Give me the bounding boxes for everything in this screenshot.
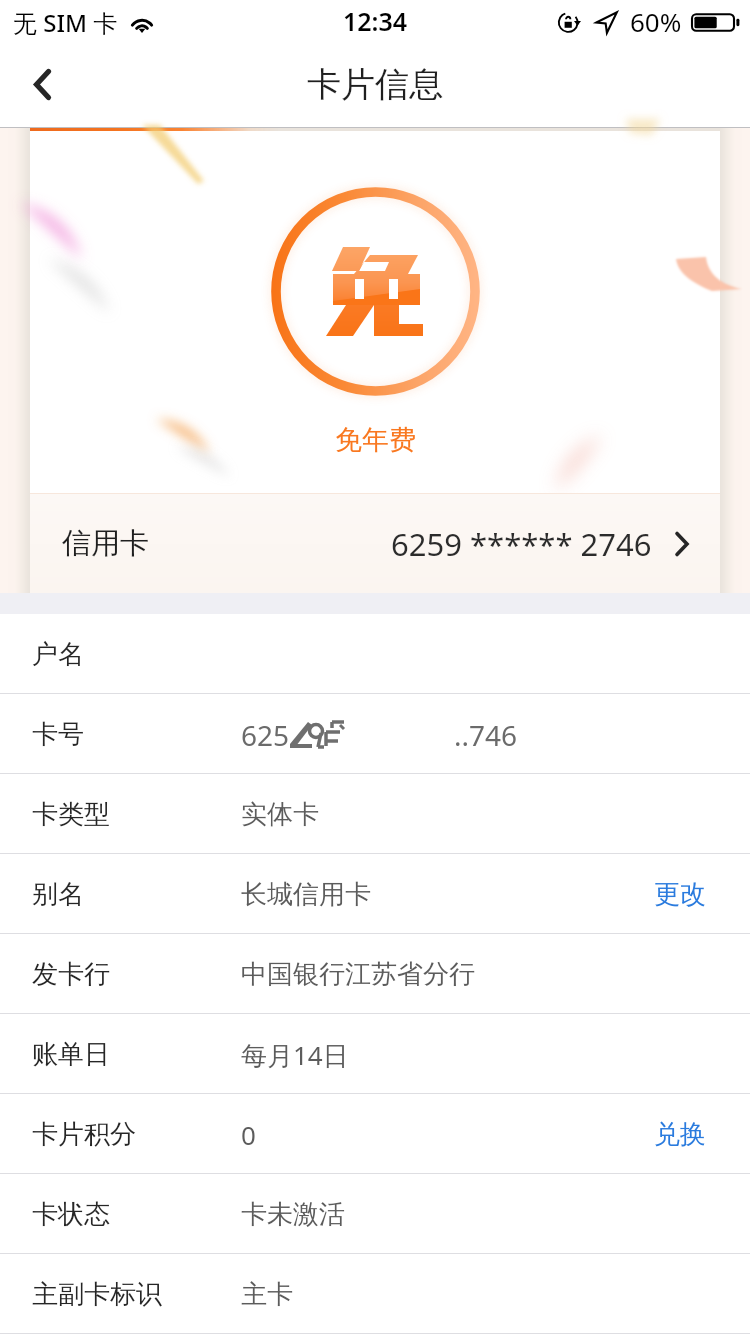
staticText: 卡类型	[32, 798, 110, 831]
button[interactable]: 免年费	[30, 128, 720, 593]
staticText: 发卡行	[32, 958, 110, 991]
staticText: ..746	[454, 716, 518, 754]
staticText: 卡状态	[32, 1198, 110, 1231]
staticText: 兑换	[654, 1118, 706, 1151]
staticText: 长城信用卡	[241, 878, 371, 911]
staticText: 别名	[32, 878, 84, 911]
staticText: 每月14日	[241, 1037, 349, 1073]
button[interactable]: 别名	[0, 854, 750, 933]
staticText: 更改	[654, 878, 706, 911]
button[interactable]: 卡状态	[0, 1174, 750, 1253]
staticText: 主副卡标识	[32, 1278, 162, 1311]
staticText: 中国银行江苏省分行	[241, 958, 475, 991]
button[interactable]: 兑换	[634, 1103, 750, 1164]
staticText: 免年费	[335, 423, 416, 457]
button[interactable]: 卡类型	[0, 774, 750, 853]
staticText: 0	[241, 1117, 256, 1152]
staticText: 无 SIM 卡	[13, 6, 118, 39]
button[interactable]: 主副卡标识	[0, 1254, 750, 1333]
staticText: 卡片信息	[307, 63, 443, 106]
staticText: 信用卡	[62, 525, 149, 562]
button[interactable]: 返回	[0, 44, 82, 128]
staticText: 卡号	[32, 718, 84, 751]
staticText: 6259 ****** 2746	[391, 523, 652, 565]
button[interactable]: 卡号	[0, 694, 750, 773]
button[interactable]: 卡片积分	[0, 1094, 750, 1173]
button[interactable]: 户名	[0, 614, 750, 693]
staticText: 60%	[630, 4, 682, 39]
staticText: 主卡	[241, 1278, 293, 1311]
staticText: 户名	[32, 638, 84, 671]
button[interactable]: 更改	[634, 863, 750, 924]
staticText: 卡未激活	[241, 1198, 345, 1231]
staticText: 12:34	[343, 4, 408, 38]
staticText: 卡片积分	[32, 1118, 136, 1151]
button[interactable]: 发卡行	[0, 934, 750, 1013]
button[interactable]: 账单日	[0, 1014, 750, 1093]
staticText: 实体卡	[241, 798, 319, 831]
staticText: 账单日	[32, 1038, 110, 1071]
staticText: 625	[241, 716, 290, 754]
